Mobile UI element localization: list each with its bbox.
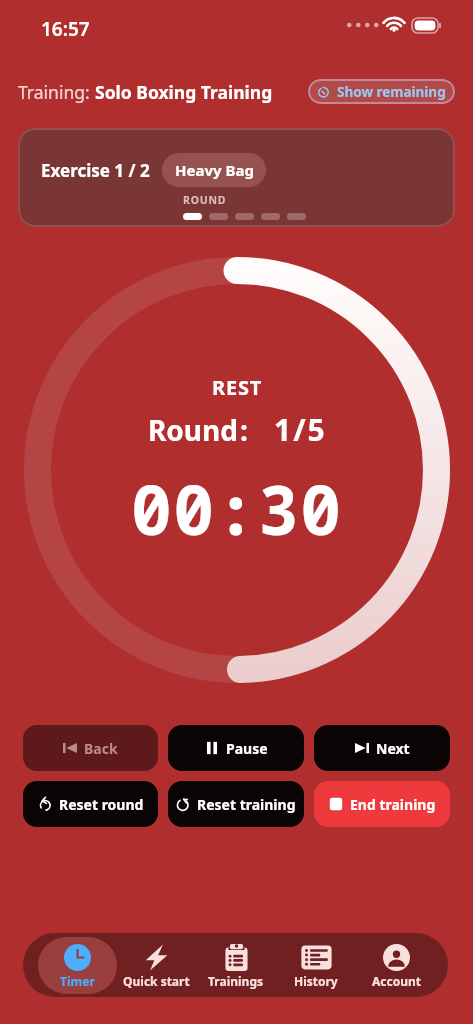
button[interactable]: Back <box>23 725 158 771</box>
staticText: Back <box>84 739 118 758</box>
button[interactable]: History <box>276 933 356 997</box>
staticText: Timer <box>60 973 95 989</box>
button[interactable]: Pause <box>168 725 304 771</box>
staticText: 00:30 <box>131 462 343 555</box>
staticText: ROUND <box>183 193 227 207</box>
staticText: Trainings <box>208 973 264 989</box>
staticText: 16:57 <box>41 16 90 42</box>
button[interactable]: End training <box>314 781 450 827</box>
staticText: End training <box>350 795 436 814</box>
staticText: Reset round <box>59 795 144 814</box>
staticText: Show remaining <box>337 83 446 101</box>
staticText: Heavy Bag <box>175 160 254 180</box>
button[interactable]: Heavy Bag <box>162 153 266 187</box>
staticText: Account <box>372 973 421 989</box>
staticText: Next <box>376 739 410 758</box>
staticText: Pause <box>226 739 268 758</box>
staticText: Exercise 1 / 2 <box>41 159 150 182</box>
button[interactable]: Quick start <box>117 933 196 997</box>
staticText: Round <box>148 411 238 449</box>
staticText: Quick start <box>123 973 190 989</box>
button[interactable]: Exercise 1 / 2 <box>18 128 455 227</box>
staticText: Solo Boxing Training <box>95 80 273 104</box>
staticText: : <box>240 411 248 449</box>
staticText: Training: <box>18 80 95 104</box>
button[interactable]: Next <box>314 725 450 771</box>
staticText: History <box>294 973 338 989</box>
button[interactable]: Show remaining <box>308 79 455 104</box>
button[interactable]: Reset training <box>168 781 304 827</box>
button[interactable]: Timer <box>38 933 117 997</box>
button[interactable]: Account <box>356 933 436 997</box>
button[interactable]: Trainings <box>196 933 276 997</box>
staticText: 1/5 <box>274 409 327 450</box>
staticText: REST <box>212 374 263 401</box>
staticText: Reset training <box>197 795 296 814</box>
button[interactable]: Reset round <box>23 781 158 827</box>
